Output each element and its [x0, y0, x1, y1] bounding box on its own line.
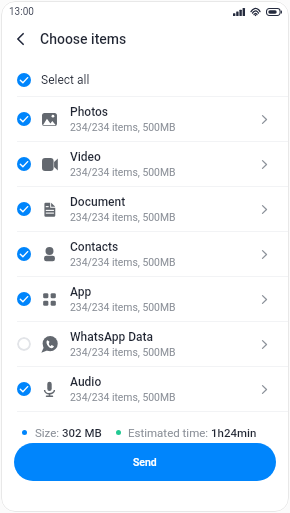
staticText: Select all	[41, 73, 90, 87]
button[interactable]: Audio	[1, 367, 289, 411]
button[interactable]: App	[1, 277, 289, 321]
staticText: Contacts	[70, 240, 119, 254]
staticText: 234/234 items, 500MB	[70, 121, 176, 133]
button[interactable]: Contacts	[1, 232, 289, 276]
button[interactable]: Video	[1, 142, 289, 186]
staticText: Choose items	[40, 31, 127, 47]
button[interactable]: Send	[14, 443, 276, 481]
staticText: Estimated time:	[128, 426, 211, 439]
staticText: 13:00	[9, 6, 34, 18]
staticText: Video	[70, 150, 101, 164]
staticText: 234/234 items, 500MB	[70, 256, 176, 268]
staticText: 234/234 items, 500MB	[70, 166, 176, 178]
staticText: App	[70, 285, 92, 299]
staticText: Size:	[35, 426, 62, 439]
staticText: 1h24min	[211, 426, 257, 439]
staticText: Audio	[70, 375, 102, 389]
staticText: 302 MB	[62, 426, 102, 439]
staticText: 234/234 items, 500MB	[70, 211, 176, 223]
staticText: WhatsApp Data	[70, 330, 153, 344]
staticText: Send	[133, 456, 157, 468]
staticText: Photos	[70, 105, 109, 119]
staticText: 234/234 items, 500MB	[70, 391, 176, 403]
button[interactable]: Back	[8, 27, 32, 51]
staticText: Document	[70, 195, 126, 209]
button[interactable]: Select all	[1, 56, 289, 96]
button[interactable]: WhatsApp Data	[1, 322, 289, 366]
staticText: 234/234 items, 500MB	[70, 301, 176, 313]
button[interactable]: Document	[1, 187, 289, 231]
staticText: 234/234 items, 500MB	[70, 346, 176, 358]
button[interactable]: Photos	[1, 97, 289, 141]
